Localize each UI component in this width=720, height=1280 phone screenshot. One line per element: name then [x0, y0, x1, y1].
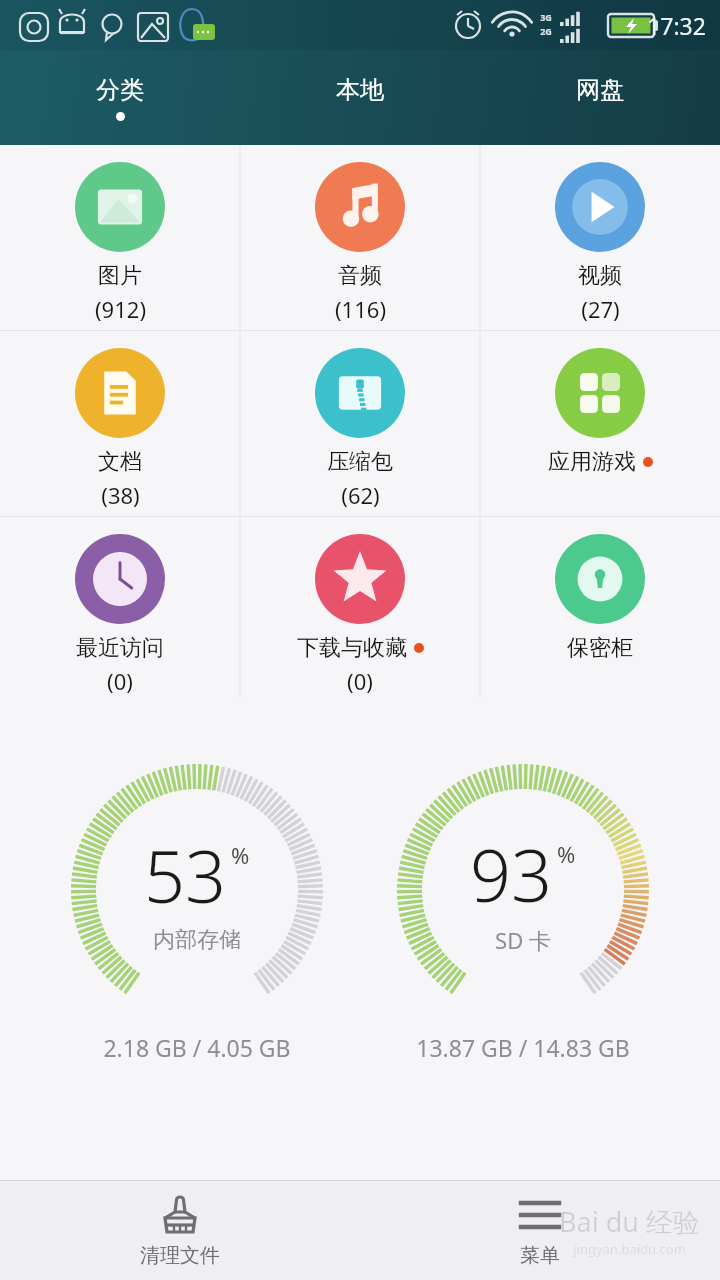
staticText: (912) [95, 294, 146, 324]
staticText: 压缩包 [327, 448, 393, 476]
staticText: 2G [540, 25, 552, 37]
button[interactable]: 菜单 [360, 1181, 720, 1280]
staticText: 图片 [98, 262, 142, 290]
staticText: 93 [470, 825, 553, 923]
staticText: jingyan.baidu.com [573, 1240, 686, 1258]
button[interactable]: 视频 [480, 145, 720, 330]
staticText: (0) [107, 666, 133, 696]
staticText: 菜单 [520, 1243, 560, 1268]
staticText: 应用游戏 [548, 448, 636, 476]
button[interactable]: 分类 [0, 50, 240, 145]
button[interactable]: 本地 [240, 50, 480, 145]
button[interactable]: 应用游戏 [480, 331, 720, 516]
staticText: (38) [101, 480, 140, 510]
staticText: 53 [144, 826, 227, 924]
button[interactable]: 保密柜 [480, 517, 720, 698]
button[interactable]: 网盘 [480, 50, 720, 145]
staticText: Bai du 经验 [559, 1203, 700, 1240]
staticText: 分类 [96, 75, 144, 105]
button[interactable]: 文档 [0, 331, 240, 516]
staticText: 3G [540, 11, 552, 23]
staticText: 下载与收藏 [297, 634, 407, 662]
button[interactable]: 压缩包 [240, 331, 480, 516]
button[interactable]: 下载与收藏 [240, 517, 480, 698]
staticText: 最近访问 [76, 634, 164, 662]
staticText: SD 卡 [495, 925, 551, 955]
staticText: (62) [341, 480, 380, 510]
staticText: 保密柜 [567, 634, 633, 662]
staticText: 网盘 [576, 75, 624, 105]
staticText: % [231, 840, 250, 870]
button[interactable]: 图片 [0, 145, 240, 330]
staticText: (0) [347, 666, 373, 696]
staticText: 17:32 [647, 10, 706, 41]
staticText: (27) [581, 294, 620, 324]
staticText: 本地 [336, 75, 384, 105]
button[interactable]: 清理文件 [0, 1181, 360, 1280]
staticText: 音频 [338, 262, 382, 290]
staticText: (116) [335, 294, 386, 324]
staticText: 13.87 GB / 14.83 GB [416, 1032, 630, 1063]
staticText: 视频 [578, 262, 622, 290]
staticText: 2.18 GB / 4.05 GB [103, 1032, 291, 1063]
staticText: % [557, 839, 576, 869]
staticText: 内部存储 [153, 926, 241, 954]
button[interactable]: 音频 [240, 145, 480, 330]
button[interactable]: 最近访问 [0, 517, 240, 698]
staticText: 文档 [98, 448, 142, 476]
staticText: 清理文件 [140, 1243, 220, 1268]
